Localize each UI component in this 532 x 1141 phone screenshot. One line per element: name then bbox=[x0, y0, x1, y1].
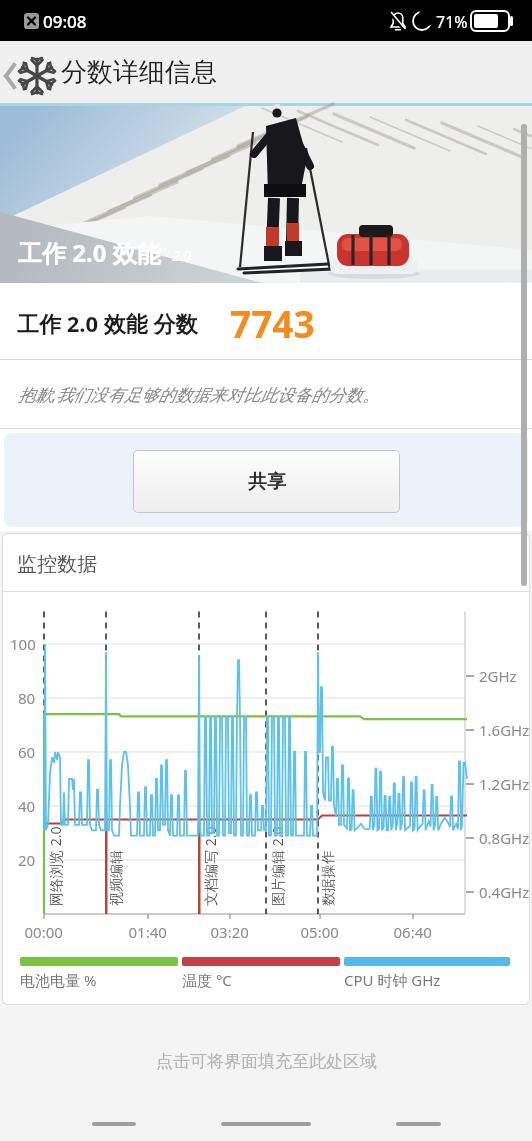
staticText: CPU 时钟 GHz bbox=[344, 970, 441, 990]
staticText: 2.0 bbox=[172, 246, 192, 265]
staticText: 点击可将界面填充至此处区域 bbox=[156, 1051, 377, 1072]
button[interactable]: 分数详细信息 bbox=[0, 41, 532, 100]
staticText: 监控数据 bbox=[17, 552, 97, 577]
staticText: 电池电量 % bbox=[20, 970, 97, 990]
button[interactable]: 点击可将界面填充至此处区域 bbox=[0, 1005, 532, 1141]
staticText: 共享 bbox=[248, 470, 286, 494]
staticText: 抱歉,我们没有足够的数据来对比此设备的分数。 bbox=[18, 383, 380, 406]
staticText: 71% bbox=[436, 11, 468, 33]
staticText: 工作 2.0 效能 bbox=[18, 236, 161, 269]
button[interactable]: 共享 bbox=[133, 450, 400, 513]
staticText: 工作 2.0 效能 分数 bbox=[17, 308, 198, 338]
staticText: 7743 bbox=[230, 298, 315, 348]
staticText: 分数详细信息 bbox=[61, 56, 217, 89]
staticText: 09:08 bbox=[43, 10, 87, 33]
staticText: 温度 °C bbox=[182, 970, 232, 990]
